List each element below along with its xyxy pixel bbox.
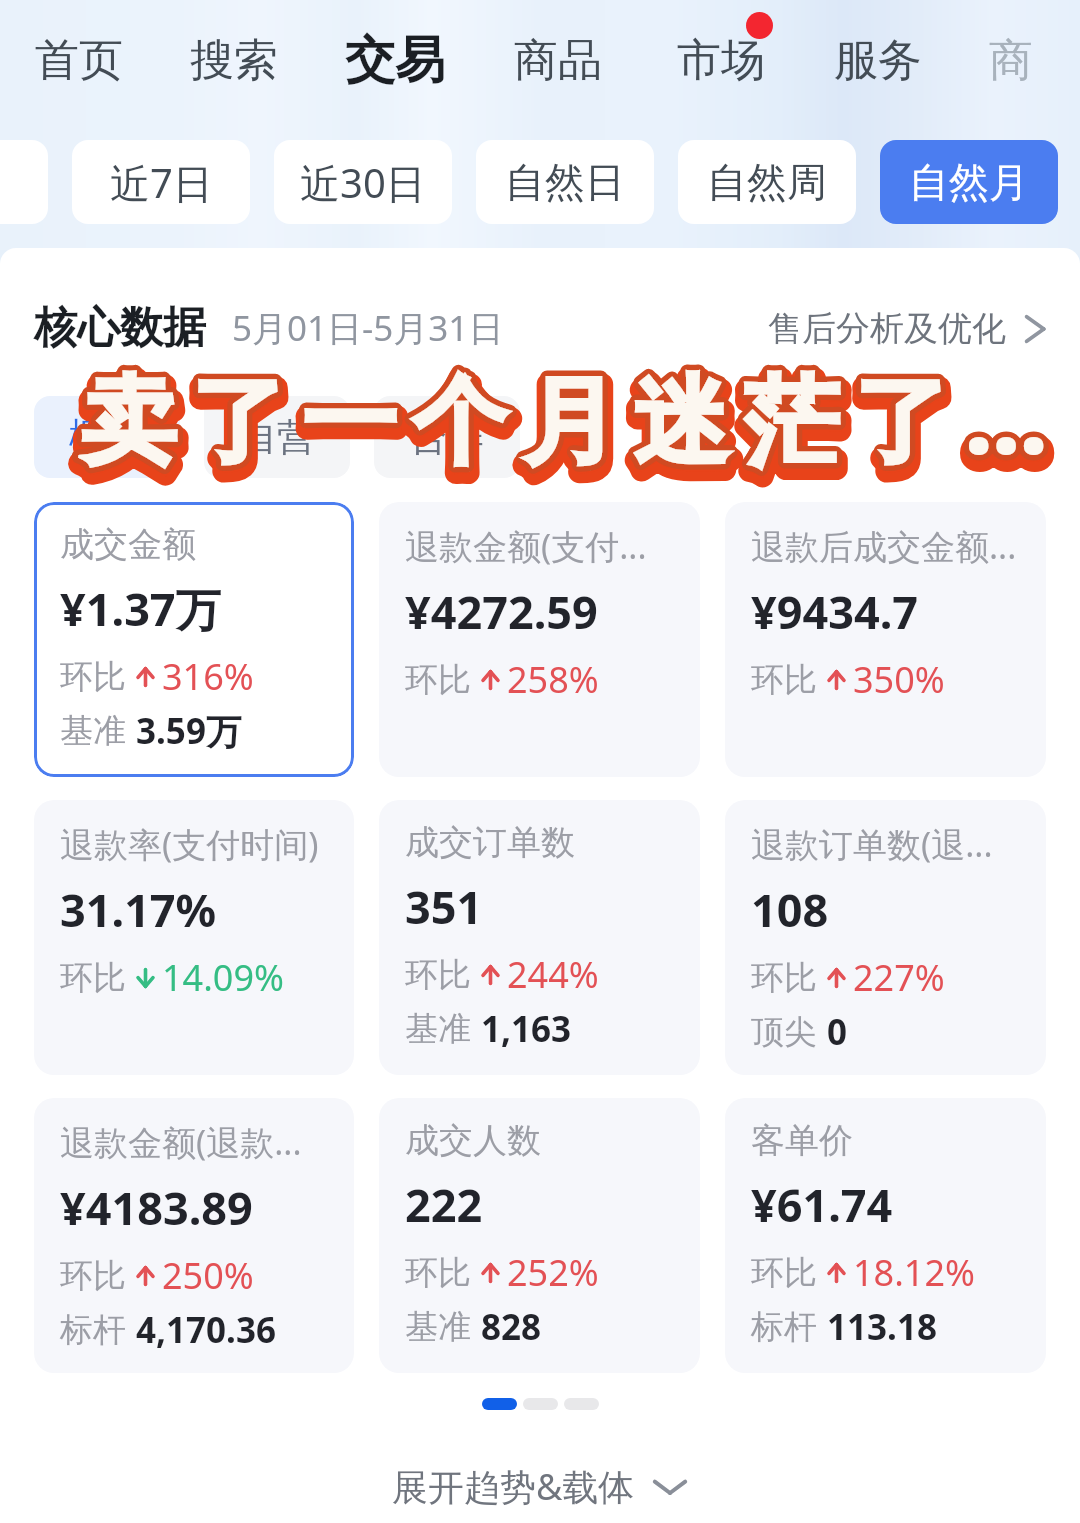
staticText: 服务 bbox=[834, 33, 922, 88]
button[interactable]: 退款后成交金额... bbox=[725, 502, 1046, 777]
button[interactable]: 商 bbox=[989, 0, 1033, 120]
staticText: 卖了一个月迷茫了… bbox=[81, 352, 1063, 482]
staticText: 113.18 bbox=[827, 1303, 937, 1351]
staticText: 顶尖 bbox=[751, 1011, 817, 1053]
staticText: 环比 bbox=[405, 954, 471, 996]
staticText: 自然日 bbox=[505, 157, 625, 207]
staticText: 成交人数 bbox=[405, 1119, 541, 1162]
button[interactable]: 合作 bbox=[374, 396, 520, 478]
staticText: 31.17% bbox=[60, 879, 217, 940]
staticText: 退款金额(退款... bbox=[60, 1119, 302, 1165]
button[interactable]: 退款订单数(退... bbox=[725, 800, 1046, 1075]
staticText: 售后分析及优化 bbox=[768, 307, 1006, 350]
staticText: 首页 bbox=[35, 33, 123, 88]
staticText: 合作 bbox=[409, 413, 485, 461]
staticText: 卖了一个月迷茫了… bbox=[82, 359, 1064, 489]
button[interactable]: 展开趋势&载体 bbox=[0, 1462, 1080, 1511]
staticText: 搜索 bbox=[190, 33, 278, 88]
staticText: 350% bbox=[853, 655, 945, 704]
staticText: 退款金额(支付... bbox=[405, 523, 647, 569]
staticText: 环比 bbox=[751, 957, 817, 999]
button[interactable]: 退款金额(退款... bbox=[34, 1098, 354, 1373]
button[interactable]: 售后分析及优化 bbox=[768, 307, 1046, 350]
button[interactable]: 成交人数 bbox=[379, 1098, 700, 1373]
staticText: 258% bbox=[507, 655, 599, 704]
button[interactable]: 自营 bbox=[204, 396, 350, 478]
button[interactable]: 自然月 bbox=[880, 140, 1058, 224]
button[interactable]: 交易 bbox=[345, 0, 445, 120]
staticText: 3.59万 bbox=[136, 707, 241, 755]
button[interactable]: 退款率(支付时间) bbox=[34, 800, 354, 1075]
staticText: 基准 bbox=[405, 1008, 471, 1050]
staticText: 环比 bbox=[405, 1252, 471, 1294]
button[interactable]: 自然日 bbox=[476, 140, 654, 224]
staticText: 316% bbox=[162, 652, 254, 701]
staticText: 227% bbox=[853, 953, 945, 1002]
staticText: 卖了一个月迷茫了… bbox=[81, 352, 1063, 482]
staticText: 客单价 bbox=[751, 1119, 853, 1162]
button[interactable]: 搜索 bbox=[190, 0, 278, 120]
staticText: 商 bbox=[989, 33, 1033, 88]
staticText: 0 bbox=[827, 1008, 848, 1056]
staticText: 卖了一个月迷茫了… bbox=[81, 352, 1063, 482]
staticText: 351 bbox=[405, 876, 483, 937]
staticText: 250% bbox=[162, 1251, 254, 1300]
staticText: 环比 bbox=[60, 656, 126, 698]
staticText: 244% bbox=[507, 950, 599, 999]
staticText: ¥9434.7 bbox=[751, 581, 919, 642]
button[interactable]: 近30日 bbox=[274, 140, 452, 224]
staticText: 成交订单数 bbox=[405, 821, 575, 864]
staticText: 自营 bbox=[239, 413, 315, 461]
staticText: 基准 bbox=[405, 1306, 471, 1348]
staticText: 108 bbox=[751, 879, 829, 940]
staticText: 退款率(支付时间) bbox=[60, 821, 319, 867]
staticText: 环比 bbox=[751, 659, 817, 701]
staticText: 5月01日-5月31日 bbox=[232, 304, 504, 352]
staticText: 商品 bbox=[514, 33, 602, 88]
staticText: 市场 bbox=[677, 33, 765, 88]
staticText: 退款订单数(退... bbox=[751, 821, 993, 867]
staticText: 1,163 bbox=[481, 1005, 572, 1053]
button[interactable]: 近7日 bbox=[72, 140, 250, 224]
staticText: 环比 bbox=[60, 957, 126, 999]
button[interactable] bbox=[0, 140, 48, 224]
staticText: 自然月 bbox=[909, 157, 1029, 207]
staticText: 展开趋势&载体 bbox=[392, 1462, 635, 1511]
staticText: 基准 bbox=[60, 710, 126, 752]
staticText: 近30日 bbox=[300, 155, 426, 210]
button[interactable]: 自然周 bbox=[678, 140, 856, 224]
staticText: 18.12% bbox=[853, 1248, 975, 1297]
staticText: 卖了一个月迷茫了… bbox=[82, 359, 1064, 489]
staticText: 概览 bbox=[69, 413, 145, 461]
staticText: 卖了一个月迷茫了… bbox=[81, 352, 1063, 482]
button[interactable]: 客单价 bbox=[725, 1098, 1046, 1373]
staticText: ¥1.37万 bbox=[60, 578, 221, 639]
staticText: 14.09% bbox=[162, 953, 284, 1002]
staticText: ¥4183.89 bbox=[60, 1177, 253, 1238]
staticText: 222 bbox=[405, 1174, 483, 1235]
button[interactable]: 成交金额 bbox=[34, 502, 354, 777]
staticText: ¥61.74 bbox=[751, 1174, 893, 1235]
staticText: 828 bbox=[481, 1303, 542, 1351]
staticText: ¥4272.59 bbox=[405, 581, 598, 642]
staticText: 成交金额 bbox=[60, 523, 196, 566]
button[interactable]: 首页 bbox=[35, 0, 123, 120]
staticText: 环比 bbox=[751, 1252, 817, 1294]
staticText: 退款后成交金额... bbox=[751, 523, 1017, 569]
other: 新消息提示 bbox=[746, 12, 773, 39]
staticText: 4,170.36 bbox=[136, 1306, 276, 1354]
button[interactable]: 成交订单数 bbox=[379, 800, 700, 1075]
staticText: 252% bbox=[507, 1248, 599, 1297]
button[interactable]: 市场 bbox=[677, 0, 765, 120]
staticText: 核心数据 bbox=[34, 301, 206, 355]
button[interactable]: 概览 bbox=[34, 396, 180, 478]
staticText: 环比 bbox=[405, 659, 471, 701]
staticText: 环比 bbox=[60, 1255, 126, 1297]
staticText: 近7日 bbox=[110, 155, 213, 210]
staticText: 交易 bbox=[345, 29, 445, 92]
staticText: 标杆 bbox=[60, 1309, 126, 1351]
button[interactable]: 退款金额(支付... bbox=[379, 502, 700, 777]
staticText: 标杆 bbox=[751, 1306, 817, 1348]
button[interactable]: 服务 bbox=[834, 0, 922, 120]
button[interactable]: 商品 bbox=[514, 0, 602, 120]
